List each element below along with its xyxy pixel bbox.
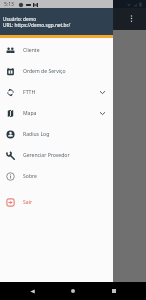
button[interactable]: More options (127, 12, 136, 26)
staticText: Cliente (23, 47, 40, 54)
staticText: Sobre (23, 173, 37, 180)
button[interactable]: Back (24, 282, 40, 300)
button[interactable]: Home (65, 282, 81, 300)
button[interactable]: Gerenciar Provedor (0, 145, 113, 166)
button[interactable]: Ordem de Serviço (0, 61, 113, 82)
button[interactable]: Recent apps (106, 282, 122, 300)
staticText: Ordem de Serviço (23, 68, 66, 75)
button[interactable]: Sair (0, 192, 113, 213)
button[interactable]: Sobre (0, 166, 113, 187)
button[interactable]: Radius Log (0, 124, 113, 145)
staticText: Mapa (23, 110, 37, 117)
button[interactable]: Cliente (0, 40, 113, 61)
staticText: Sair (23, 199, 33, 206)
button[interactable]: Mapa (0, 103, 113, 124)
staticText: FTTH (23, 89, 36, 96)
staticText: Gerenciar Provedor (23, 152, 70, 159)
button[interactable]: FTTH (0, 82, 113, 103)
staticText: Radius Log (23, 131, 50, 138)
staticText: 5:13 (4, 1, 14, 8)
staticText: Usuário: demo URL: https://demo.sgp.net.… (3, 16, 71, 28)
